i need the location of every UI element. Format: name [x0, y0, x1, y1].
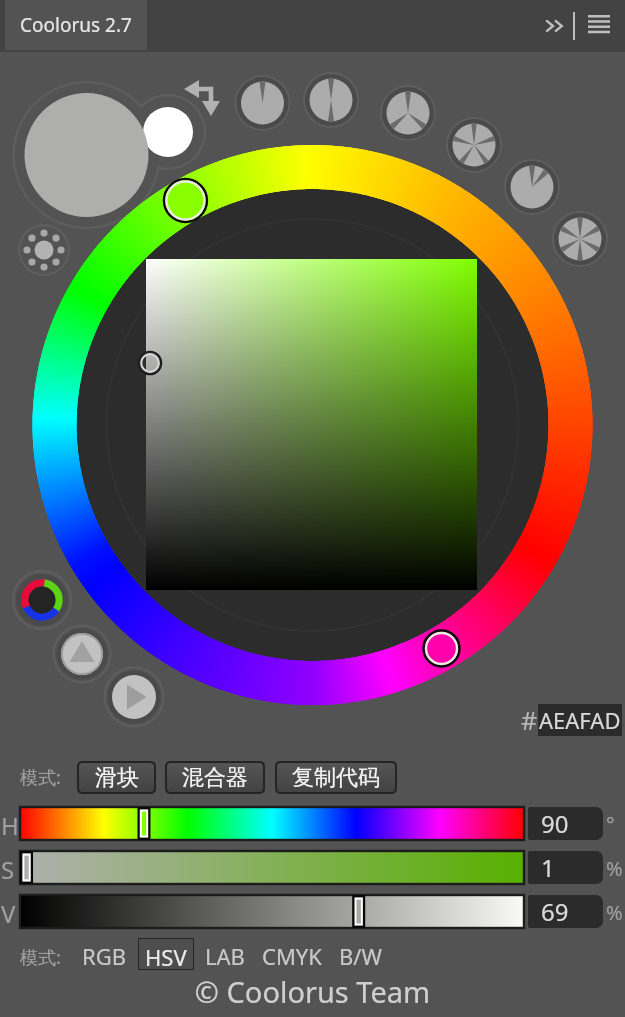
- staticText: %: [606, 899, 623, 926]
- staticText: #: [521, 703, 538, 737]
- staticText: S: [1, 853, 15, 886]
- button[interactable]: [20, 895, 524, 928]
- staticText: HSV: [145, 942, 187, 966]
- staticText: 69: [541, 895, 569, 928]
- staticText: © Coolorus Team: [0, 972, 625, 1011]
- button[interactable]: LAB: [205, 941, 245, 967]
- button[interactable]: [20, 851, 524, 884]
- staticText: LAB: [205, 941, 245, 967]
- staticText: RGB: [82, 941, 127, 967]
- staticText: 混合器: [182, 764, 248, 792]
- button[interactable]: Coolorus 2.7: [5, 0, 147, 50]
- button[interactable]: 1: [528, 851, 603, 884]
- button[interactable]: Menu: [581, 8, 617, 44]
- button[interactable]: CMYK: [262, 941, 322, 967]
- staticText: B/W: [339, 941, 382, 967]
- staticText: 复制代码: [292, 764, 380, 792]
- staticText: %: [606, 855, 623, 882]
- button[interactable]: 混合器: [167, 763, 263, 792]
- staticText: 滑块: [95, 764, 139, 792]
- staticText: H: [1, 809, 19, 842]
- staticText: 模式:: [20, 945, 61, 970]
- button[interactable]: HSV: [145, 942, 187, 966]
- button[interactable]: 69: [528, 895, 603, 928]
- button[interactable]: [20, 807, 524, 840]
- button[interactable]: AEAFAD: [538, 704, 622, 736]
- staticText: CMYK: [262, 941, 322, 967]
- staticText: V: [1, 897, 16, 930]
- button[interactable]: 90: [528, 807, 603, 840]
- staticText: Coolorus 2.7: [20, 12, 132, 38]
- staticText: °: [606, 811, 615, 838]
- staticText: 模式:: [20, 765, 61, 790]
- staticText: AEAFAD: [539, 705, 621, 735]
- button[interactable]: 复制代码: [277, 763, 395, 792]
- staticText: 90: [541, 807, 569, 840]
- button[interactable]: Expand panel: [537, 8, 573, 44]
- button[interactable]: 滑块: [79, 763, 154, 792]
- button[interactable]: RGB: [82, 941, 127, 967]
- button[interactable]: B/W: [339, 941, 382, 967]
- staticText: 1: [541, 851, 555, 884]
